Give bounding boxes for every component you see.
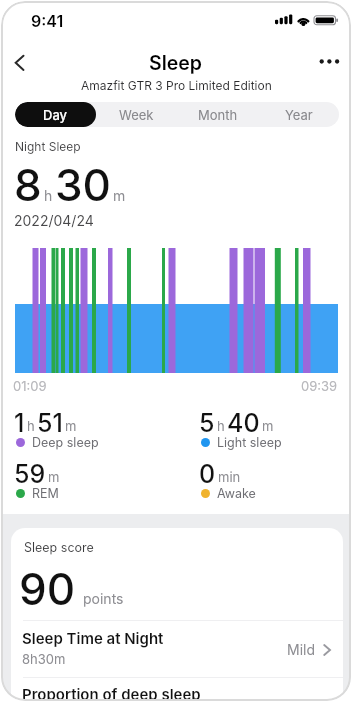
staticText: Light sleep [217,435,282,450]
button[interactable]: Month [177,102,258,127]
staticText: 8h30m [22,651,66,667]
staticText: Day [43,107,68,123]
staticText: points [83,590,124,607]
button[interactable] [313,49,345,75]
staticText: m [48,469,60,485]
staticText: 2022/04/24 [14,212,94,229]
staticText: 40 [227,408,260,438]
staticText: 30 [55,158,111,211]
button[interactable]: Week [96,102,177,127]
button[interactable]: REM [14,486,59,501]
staticText: REM [32,486,59,501]
staticText: Deep sleep [32,435,99,450]
staticText: 9:41 [31,11,64,30]
staticText: Mild [287,641,315,658]
button[interactable]: Awake [199,486,256,501]
button[interactable]: Deep sleep [14,435,99,450]
button[interactable]: Day [15,102,96,127]
staticText: Night Sleep [15,139,81,154]
staticText: 59 [14,459,46,489]
staticText: 8 [14,158,42,211]
staticText: m [65,418,77,434]
button[interactable]: Year [258,102,339,127]
staticText: h [44,187,53,204]
staticText: Sleep Time at Night [22,629,164,647]
staticText: h [27,418,35,434]
staticText: min [218,469,241,485]
staticText: 09:39 [301,378,338,394]
staticText: m [262,418,274,434]
staticText: 1 [14,408,25,438]
staticText: 0 [199,459,216,489]
staticText: 01:09 [13,378,47,394]
staticText: 51 [37,408,63,438]
staticText: Awake [217,486,256,501]
staticText: Sleep [149,51,203,75]
staticText: Month [198,107,238,123]
staticText: Year [285,107,313,123]
staticText: Proportion of deep sleep [22,685,201,701]
staticText: h [217,418,225,434]
button[interactable]: Sleep Time at Night [11,621,343,677]
button[interactable]: Light sleep [199,435,282,450]
staticText: Week [119,107,154,123]
staticText: m [113,187,126,204]
staticText: 90 [19,562,76,615]
button[interactable] [7,51,35,79]
staticText: Amazfit GTR 3 Pro Limited Edition [81,78,272,93]
staticText: Sleep score [24,540,94,555]
staticText: 5 [199,408,215,438]
